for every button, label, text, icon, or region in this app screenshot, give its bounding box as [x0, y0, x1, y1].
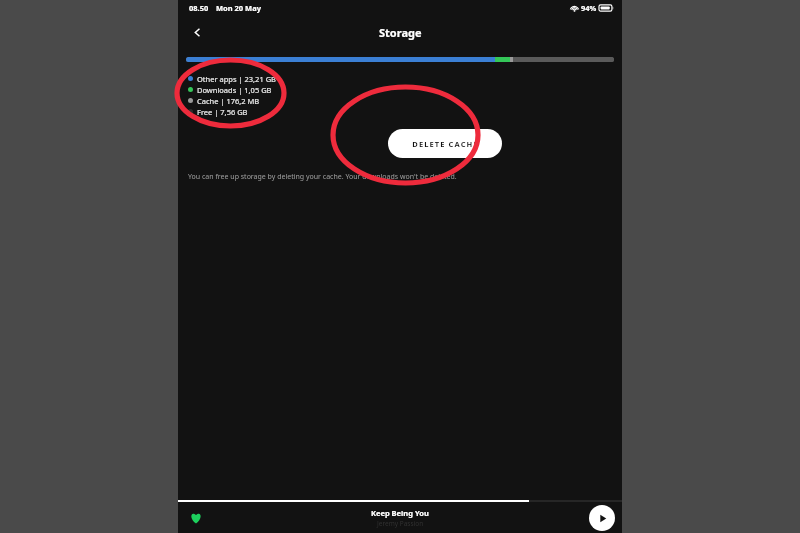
staticText: Keep Being You [371, 508, 429, 518]
staticText: 94% [581, 3, 597, 13]
staticText: Storage [379, 25, 422, 40]
button[interactable]: Play [589, 505, 615, 531]
staticText: Mon 20 May [216, 3, 261, 13]
staticText: Other apps | 23,21 GB [197, 74, 276, 84]
staticText: Downloads | 1,05 GB [197, 85, 272, 95]
button[interactable]: DELETE CACHE [388, 129, 502, 158]
staticText: 08.50 [189, 3, 209, 13]
staticText: Jeremy Passion [377, 519, 424, 528]
button[interactable]: Like [184, 506, 208, 530]
staticText: You can free up storage by deleting your… [188, 172, 457, 182]
staticText: Cache | 176,2 MB [197, 96, 260, 106]
staticText: Free | 7,56 GB [197, 107, 248, 117]
button[interactable]: Back [184, 19, 210, 45]
staticText: DELETE CACHE [412, 139, 479, 149]
